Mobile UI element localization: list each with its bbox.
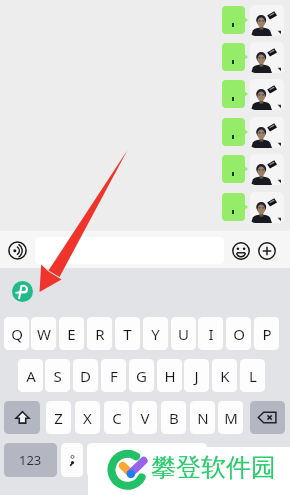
- button[interactable]: C: [104, 401, 129, 434]
- button[interactable]: P: [254, 317, 279, 350]
- button[interactable]: [222, 80, 245, 108]
- button[interactable]: S: [45, 359, 70, 392]
- button[interactable]: Space: [87, 443, 207, 477]
- button[interactable]: J: [184, 359, 209, 392]
- button[interactable]: X: [75, 401, 100, 434]
- staticText: I: [208, 324, 214, 344]
- staticText: X: [83, 408, 92, 428]
- button[interactable]: F: [101, 359, 126, 392]
- button[interactable]: [222, 155, 245, 183]
- staticText: M: [224, 408, 238, 428]
- button[interactable]: W: [31, 317, 56, 350]
- staticText: C: [112, 408, 122, 428]
- staticText: A: [26, 366, 36, 386]
- button[interactable]: [61, 443, 83, 477]
- button[interactable]: L: [240, 359, 265, 392]
- button[interactable]: More: [257, 241, 276, 260]
- staticText: F: [110, 366, 118, 386]
- staticText: V: [140, 408, 150, 428]
- button[interactable]: Shift: [4, 401, 40, 434]
- staticText: K: [220, 366, 230, 386]
- button[interactable]: [222, 193, 245, 221]
- staticText: O: [233, 324, 245, 344]
- staticText: W: [37, 324, 51, 344]
- staticText: L: [249, 366, 257, 386]
- button[interactable]: Z: [46, 401, 71, 434]
- button[interactable]: A: [18, 359, 43, 392]
- staticText: U: [178, 324, 189, 344]
- staticText: 123: [19, 451, 42, 469]
- button[interactable]: G: [129, 359, 154, 392]
- button[interactable]: Avatar: [250, 117, 284, 148]
- button[interactable]: T: [115, 317, 140, 350]
- staticText: H: [164, 366, 176, 386]
- staticText: D: [80, 366, 91, 386]
- staticText: Z: [54, 408, 63, 428]
- button[interactable]: H: [157, 359, 182, 392]
- button[interactable]: R: [87, 317, 112, 350]
- button[interactable]: N: [190, 401, 215, 434]
- button[interactable]: Input method: [12, 281, 33, 302]
- button[interactable]: [35, 237, 224, 264]
- button[interactable]: Q: [4, 317, 29, 350]
- staticText: T: [123, 324, 132, 344]
- button[interactable]: K: [212, 359, 237, 392]
- staticText: 攀登软件园: [151, 452, 276, 483]
- button[interactable]: E: [59, 317, 84, 350]
- staticText: S: [53, 366, 62, 386]
- button[interactable]: Avatar: [250, 5, 284, 36]
- staticText: Q: [11, 324, 23, 344]
- button[interactable]: V: [132, 401, 157, 434]
- staticText: R: [95, 324, 105, 344]
- staticText: G: [136, 366, 147, 386]
- button[interactable]: Avatar: [250, 154, 284, 185]
- button[interactable]: M: [218, 401, 243, 434]
- staticText: B: [169, 408, 179, 428]
- button[interactable]: 123: [4, 443, 57, 477]
- staticText: P: [262, 324, 272, 344]
- button[interactable]: Avatar: [250, 42, 284, 73]
- button[interactable]: Avatar: [250, 192, 284, 223]
- button[interactable]: I: [198, 317, 223, 350]
- staticText: J: [194, 366, 199, 386]
- staticText: Y: [151, 324, 160, 344]
- button[interactable]: [222, 118, 245, 146]
- button[interactable]: O: [226, 317, 251, 350]
- button[interactable]: [222, 6, 245, 34]
- button[interactable]: Voice input: [6, 239, 29, 262]
- button[interactable]: Avatar: [250, 79, 284, 110]
- staticText: N: [197, 408, 209, 428]
- staticText: E: [67, 324, 76, 344]
- button[interactable]: [222, 43, 245, 71]
- button[interactable]: Emoji: [231, 241, 250, 260]
- button[interactable]: U: [171, 317, 196, 350]
- button[interactable]: Backspace: [250, 401, 285, 434]
- button[interactable]: B: [161, 401, 186, 434]
- button[interactable]: Y: [143, 317, 168, 350]
- button[interactable]: D: [73, 359, 98, 392]
